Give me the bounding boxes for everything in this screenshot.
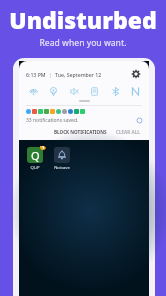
staticText: Noisave [54, 165, 70, 171]
staticText: QLiP [30, 165, 40, 171]
staticText: 1 [42, 146, 45, 150]
button[interactable]: BLOCK NOTIFICATIONS [52, 127, 109, 137]
button[interactable]: NFC [128, 84, 142, 98]
button[interactable]: Sound off [67, 84, 81, 98]
button[interactable]: Expand [137, 118, 142, 123]
staticText: Q [31, 148, 40, 163]
staticText: Undisturbed [0, 4, 166, 35]
button[interactable]: Wi-Fi [26, 84, 40, 98]
staticText: Tue, September 12 [55, 71, 102, 78]
button[interactable]: Bluetooth [108, 84, 122, 98]
staticText: 6:13 PM [26, 71, 46, 78]
button[interactable]: Smart View [87, 84, 101, 98]
staticText: | [46, 71, 55, 78]
staticText: CLEAR ALL [116, 129, 140, 135]
button[interactable]: Settings [130, 68, 142, 80]
button[interactable]: Location [46, 84, 60, 98]
staticText: Read when you want. [0, 37, 166, 49]
button[interactable]: Noisave [51, 146, 73, 171]
button[interactable]: CLEAR ALL [114, 127, 142, 137]
staticText: 33 notifications saved. [26, 117, 79, 124]
button[interactable]: Q [24, 146, 46, 171]
staticText: BLOCK NOTIFICATIONS [54, 129, 107, 135]
